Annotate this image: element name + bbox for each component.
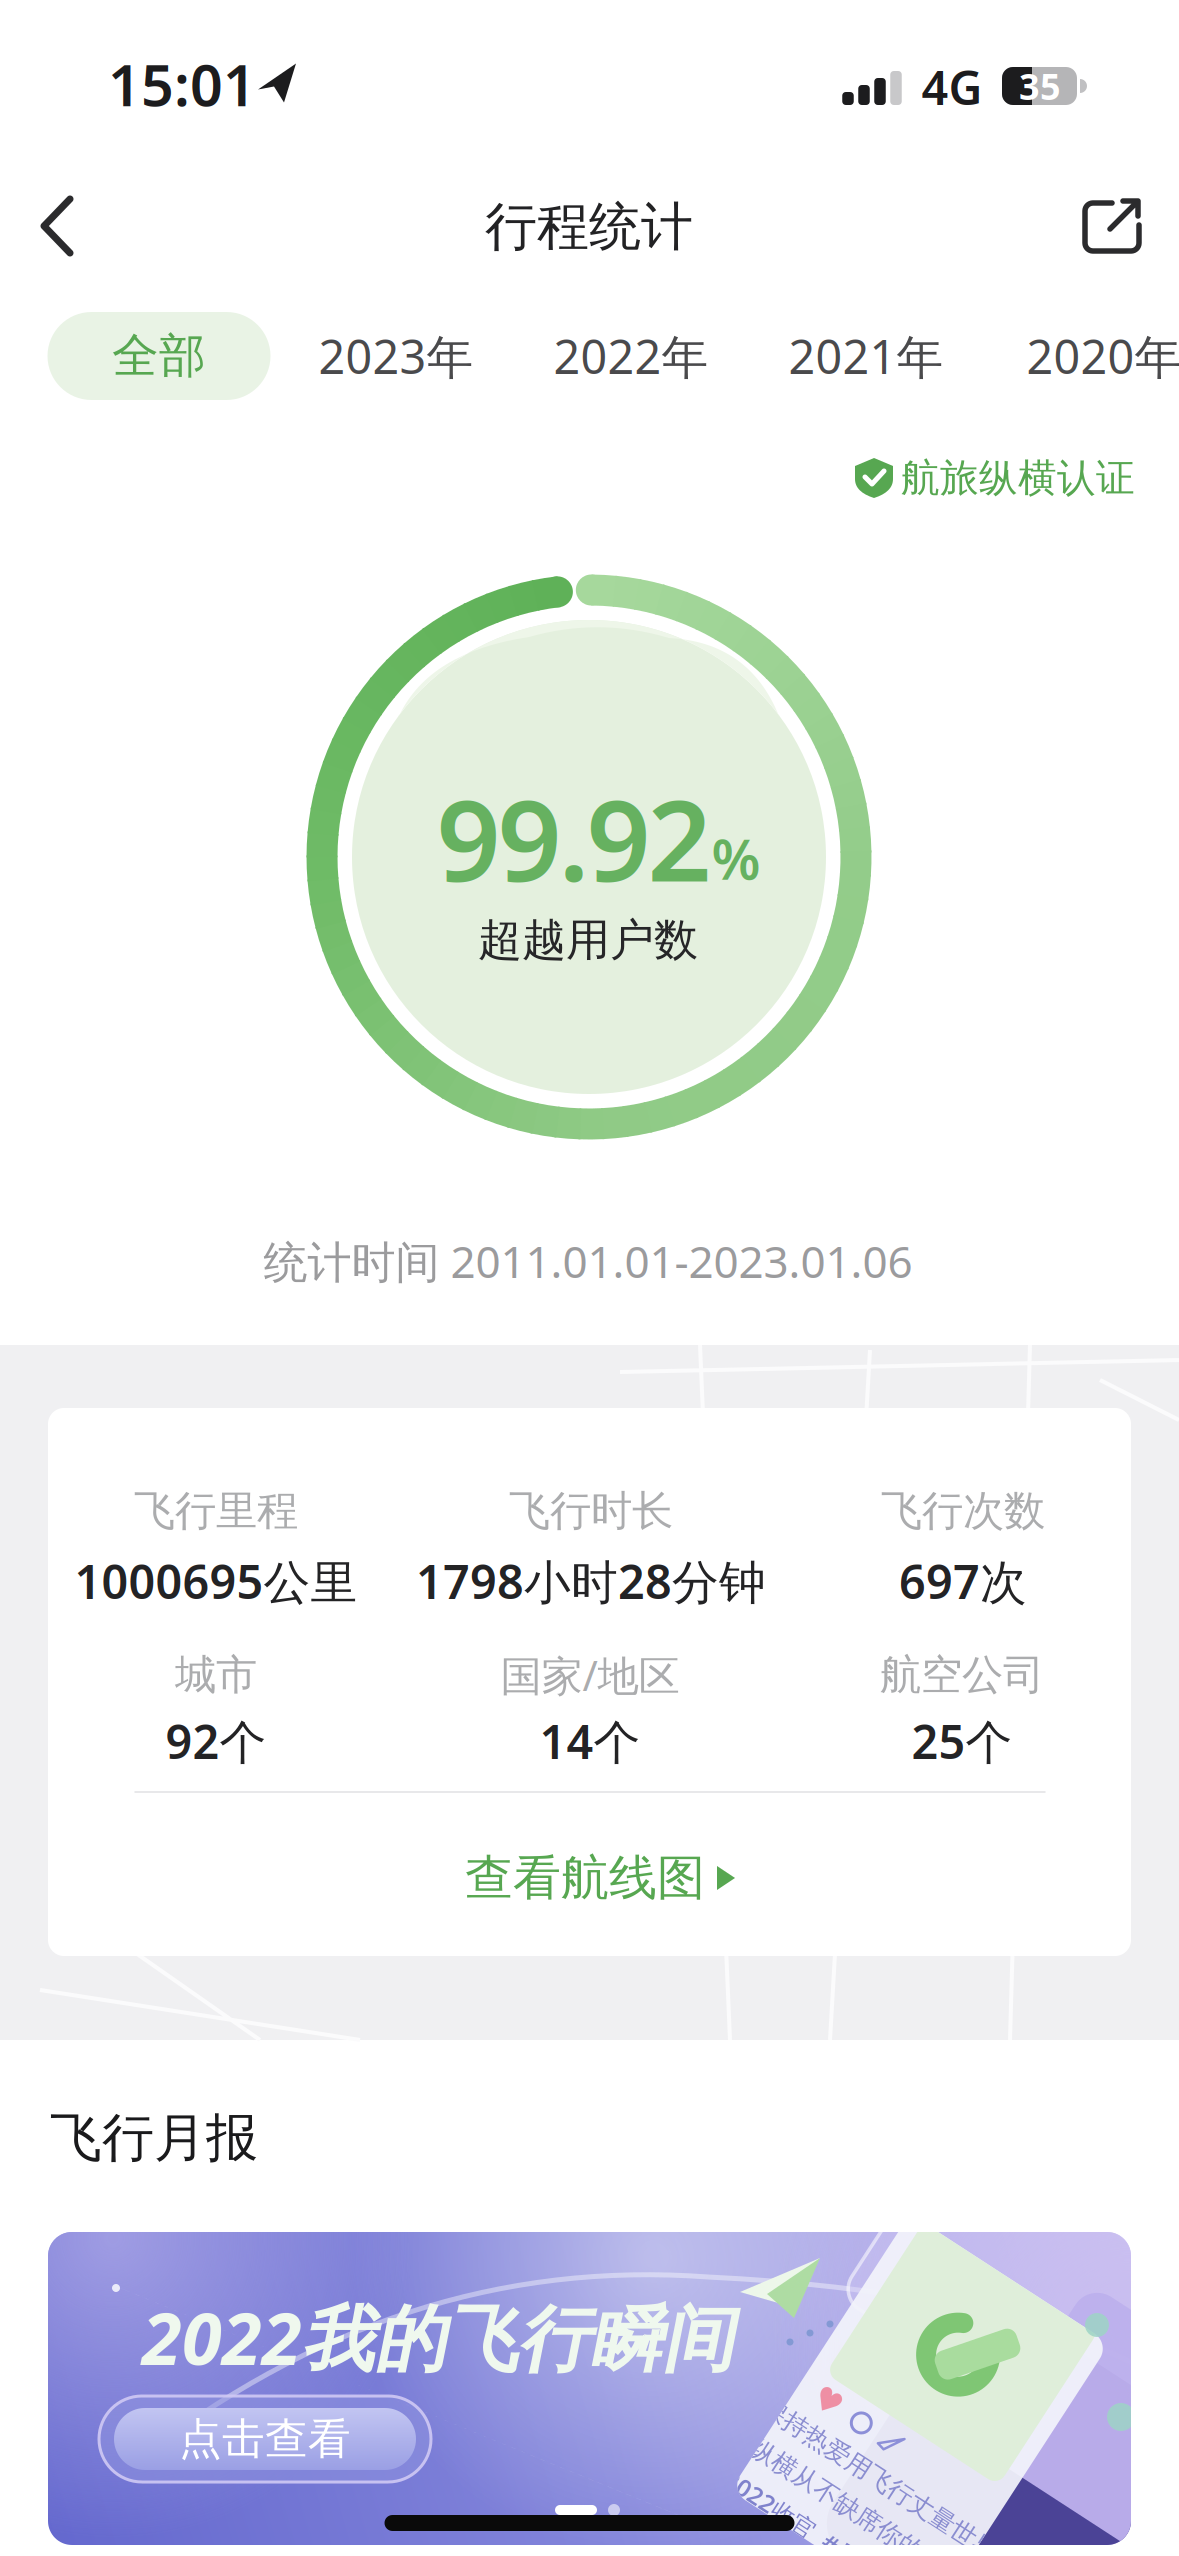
staticText: 飞行时长	[509, 1486, 673, 1536]
staticText: 1798小时28分钟	[416, 1550, 766, 1612]
staticText: ♥	[820, 2436, 849, 2472]
staticText: 航旅纵横从不缺席你的每段旅程	[745, 2516, 1095, 2547]
staticText: 92个	[165, 1710, 266, 1772]
staticText: 2021年	[788, 325, 943, 387]
staticText: 超越用户数	[478, 913, 698, 967]
staticText: 15:01	[108, 46, 256, 122]
staticText: 国家/地区	[500, 1648, 679, 1702]
staticText: 2022我的飞行瞬间	[142, 2289, 734, 2385]
staticText: 飞行里程	[134, 1486, 298, 1536]
staticText: 飞行次数	[881, 1486, 1045, 1536]
staticText: 35	[1019, 62, 1061, 110]
button[interactable]	[1072, 187, 1152, 267]
staticText: 点击查看	[179, 2413, 351, 2465]
button[interactable]: 2022年	[523, 312, 738, 400]
button[interactable]: 2020年	[996, 312, 1179, 400]
button[interactable]: ♥	[48, 2232, 1131, 2545]
staticText: 4G	[921, 56, 982, 118]
staticText: 航旅纵横认证	[901, 454, 1135, 502]
staticText: 飞行月报	[50, 2106, 258, 2170]
staticText: 2020年	[1026, 325, 1179, 387]
staticText: 1000695公里	[74, 1550, 357, 1612]
button[interactable]: 全部	[47, 312, 270, 400]
staticText: 统计时间 2011.01.01-2023.01.06	[263, 1232, 912, 1290]
staticText: 保持热爱用飞行丈量世界	[782, 2476, 1057, 2507]
button[interactable]: 2023年	[288, 312, 503, 400]
staticText: 航空公司	[880, 1650, 1044, 1700]
button[interactable]: 航旅纵横认证	[855, 448, 1135, 508]
staticText: 城市	[175, 1650, 257, 1700]
staticText: 2022年	[553, 325, 708, 387]
button[interactable]: 2021年	[758, 312, 973, 400]
button[interactable]: 查看航线图	[440, 1838, 760, 1918]
staticText: 25个	[911, 1710, 1012, 1772]
staticText: 697次	[899, 1550, 1027, 1612]
staticText: 全部	[112, 327, 206, 385]
staticText: 14个	[539, 1710, 640, 1772]
staticText: 查看航线图	[465, 1848, 705, 1907]
staticText: 行程统计	[485, 195, 693, 259]
button[interactable]	[18, 181, 98, 271]
staticText: 99.92	[436, 764, 711, 912]
staticText: 2023年	[318, 325, 473, 387]
staticText: %	[711, 821, 760, 895]
